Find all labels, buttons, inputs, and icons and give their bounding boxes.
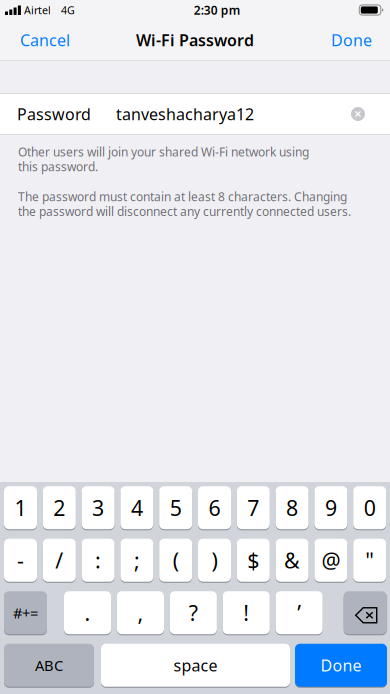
button[interactable]: Clear text (351, 107, 365, 121)
button[interactable]: $ (237, 539, 270, 583)
staticText: $ (247, 546, 259, 574)
button[interactable]: , (117, 591, 164, 635)
staticText: @ (321, 546, 340, 574)
button[interactable]: 9 (314, 486, 347, 530)
staticText: 0 (364, 494, 376, 522)
button[interactable]: 5 (159, 486, 192, 530)
button[interactable]: space (101, 644, 290, 688)
button[interactable]: Cancel (0, 20, 80, 60)
staticText: & (284, 546, 300, 574)
staticText: . (84, 599, 90, 627)
staticText: this password. (18, 159, 98, 175)
button[interactable]: Delete (344, 591, 387, 635)
staticText: The password must contain at least 8 cha… (18, 188, 347, 204)
button[interactable]: ? (170, 591, 217, 635)
staticText: 9 (325, 494, 337, 522)
staticText: the password will disconnect any current… (18, 203, 351, 219)
button[interactable]: ! (223, 591, 270, 635)
staticText: ABC (35, 655, 63, 675)
button[interactable]: 2 (43, 486, 76, 530)
button[interactable]: - (4, 539, 37, 583)
staticText: / (55, 546, 63, 574)
button[interactable]: #+= (4, 591, 47, 635)
button[interactable]: 7 (237, 486, 270, 530)
staticText: Airtel (24, 3, 51, 17)
staticText: Password (17, 103, 91, 125)
button[interactable]: ) (198, 539, 231, 583)
button[interactable]: ABC (4, 644, 94, 688)
staticText: 2:30 pm (194, 2, 241, 18)
staticText: 7 (247, 494, 259, 522)
button[interactable]: / (43, 539, 76, 583)
staticText: 2 (53, 494, 65, 522)
button[interactable]: 0 (353, 486, 386, 530)
staticText: ? (189, 599, 198, 627)
staticText: , (137, 599, 143, 627)
staticText: space (173, 655, 217, 676)
staticText: Done (320, 655, 361, 676)
button[interactable]: ; (120, 539, 153, 583)
staticText: ) (211, 546, 217, 574)
staticText: " (365, 546, 374, 574)
button[interactable]: 1 (4, 486, 37, 530)
button[interactable]: ( (159, 539, 192, 583)
staticText: Other users will join your shared Wi-Fi … (18, 144, 309, 160)
staticText: Cancel (20, 29, 70, 51)
button[interactable]: 4 (120, 486, 153, 530)
staticText: 3 (92, 494, 104, 522)
staticText: 6 (208, 494, 220, 522)
staticText: 8 (286, 494, 298, 522)
staticText: : (95, 546, 101, 574)
staticText: #+= (13, 603, 38, 622)
button[interactable]: 3 (82, 486, 115, 530)
staticText: 1 (14, 494, 26, 522)
button[interactable]: " (353, 539, 386, 583)
button[interactable]: : (82, 539, 115, 583)
staticText: ( (173, 546, 179, 574)
button[interactable]: @ (314, 539, 347, 583)
button[interactable]: ’ (276, 591, 323, 635)
button[interactable]: Done (295, 644, 387, 688)
staticText: 5 (170, 494, 182, 522)
button[interactable]: 8 (276, 486, 309, 530)
staticText: Done (331, 29, 372, 51)
staticText: Wi-Fi Password (136, 29, 254, 51)
staticText: ! (243, 599, 249, 627)
staticText: 4 (131, 494, 143, 522)
button[interactable]: 6 (198, 486, 231, 530)
button[interactable]: & (276, 539, 309, 583)
button[interactable]: . (64, 591, 111, 635)
staticText: ’ (297, 599, 301, 627)
button[interactable]: Done (321, 20, 390, 60)
staticText: ; (134, 546, 140, 574)
staticText: 4G (61, 3, 75, 17)
staticText: - (17, 546, 24, 574)
staticText: tanveshacharya12 (116, 103, 254, 125)
